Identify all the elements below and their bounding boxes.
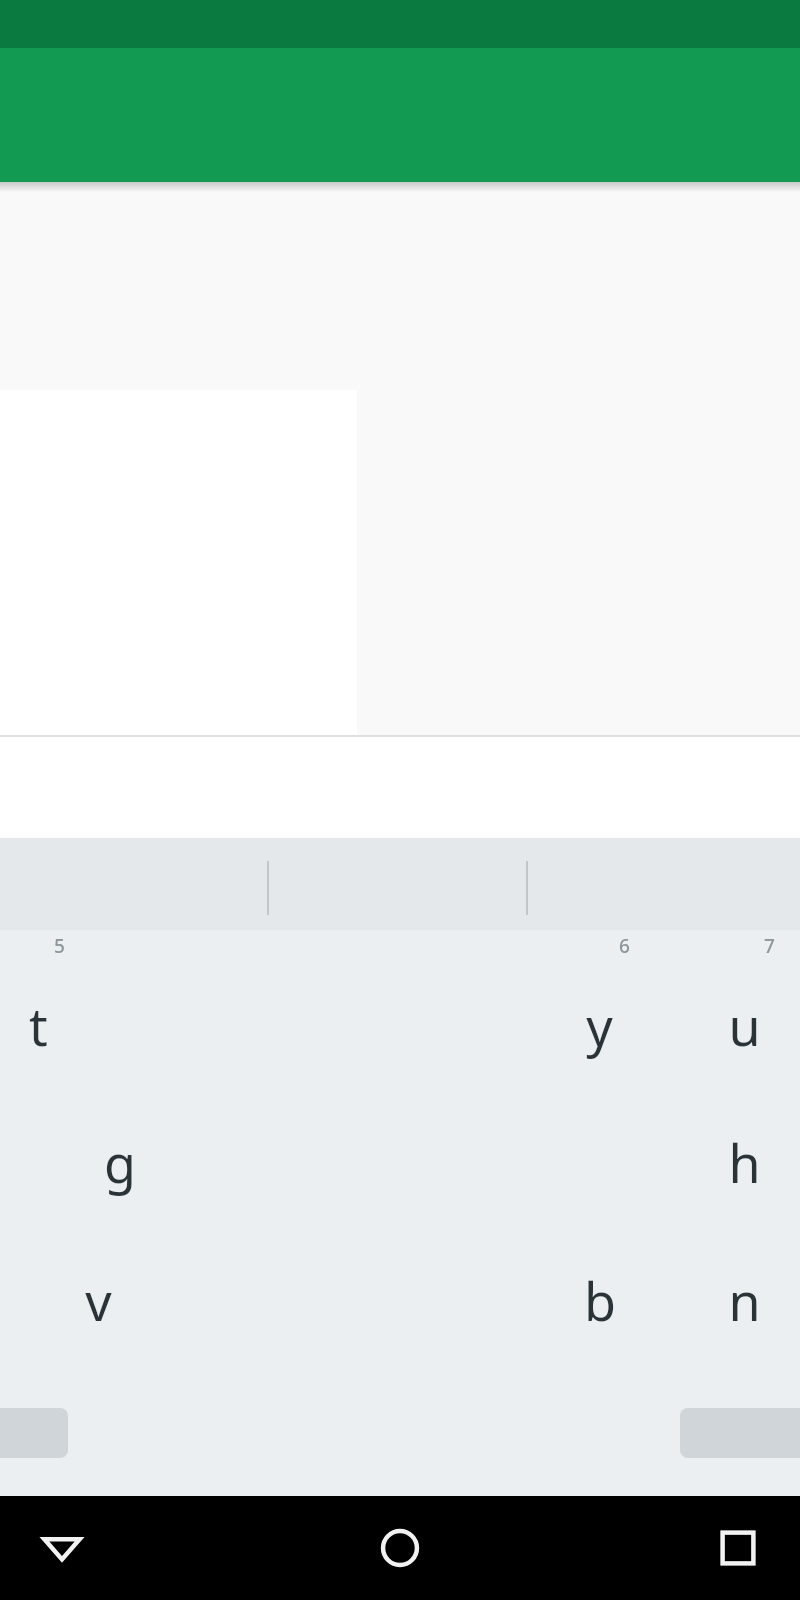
staticText: 7 <box>764 933 775 959</box>
button[interactable]: n <box>694 1245 794 1355</box>
staticText: t <box>29 990 48 1061</box>
button[interactable]: Back <box>12 1498 112 1598</box>
staticText: g <box>104 1127 136 1198</box>
staticText: 6 <box>619 933 630 959</box>
button[interactable]: h <box>694 1107 794 1217</box>
button[interactable]: b <box>550 1245 650 1355</box>
staticText: 5 <box>54 933 65 959</box>
button[interactable]: Recent apps <box>688 1498 788 1598</box>
button[interactable]: y <box>549 970 649 1080</box>
staticText: b <box>584 1265 616 1336</box>
button[interactable]: Home <box>350 1498 450 1598</box>
button[interactable]: u <box>694 970 794 1080</box>
staticText: v <box>85 1265 112 1336</box>
staticText: h <box>728 1127 761 1198</box>
staticText: y <box>586 990 613 1061</box>
staticText: u <box>728 990 761 1061</box>
button[interactable]: t <box>0 970 88 1080</box>
staticText: n <box>728 1265 761 1336</box>
button[interactable]: v <box>48 1245 148 1355</box>
button[interactable]: g <box>70 1107 170 1217</box>
